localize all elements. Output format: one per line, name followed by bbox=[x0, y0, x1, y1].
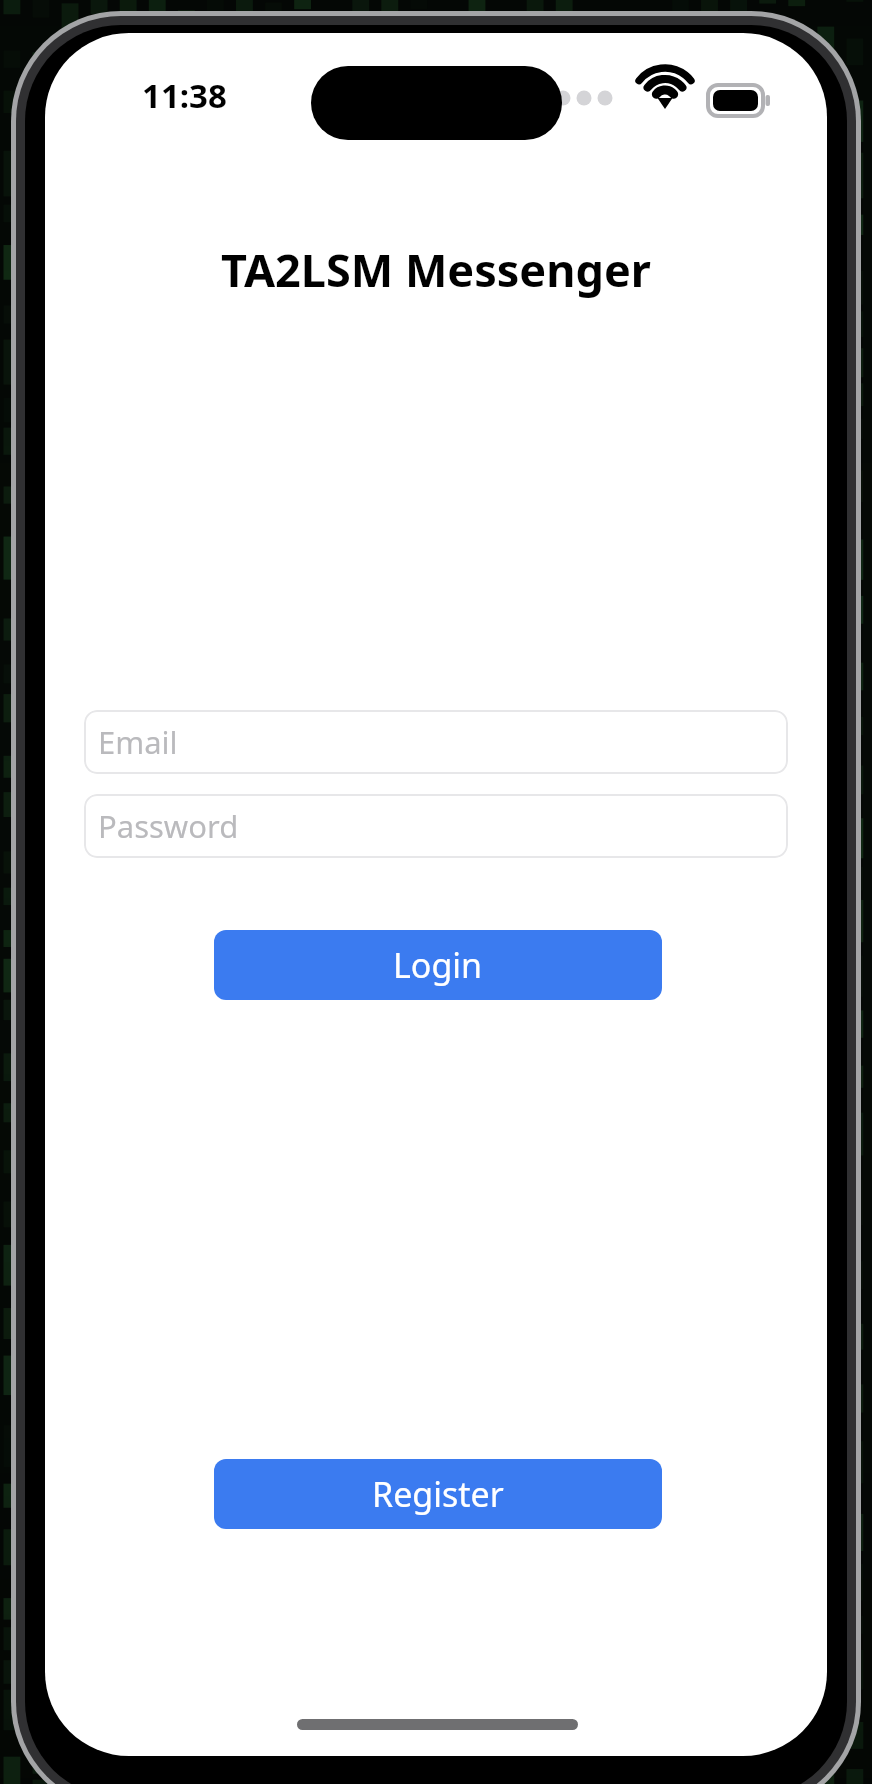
staticText: Login bbox=[393, 942, 483, 988]
staticText: Email bbox=[98, 721, 178, 763]
staticText: TA2LSM Messenger bbox=[0, 239, 872, 300]
staticText: 11:38 bbox=[142, 73, 227, 118]
button[interactable]: Register bbox=[214, 1459, 662, 1529]
staticText: Register bbox=[372, 1471, 504, 1517]
button[interactable]: Login bbox=[214, 930, 662, 1000]
staticText: Password bbox=[98, 805, 239, 847]
button[interactable]: Password bbox=[84, 794, 788, 858]
button[interactable]: Email bbox=[84, 710, 788, 774]
